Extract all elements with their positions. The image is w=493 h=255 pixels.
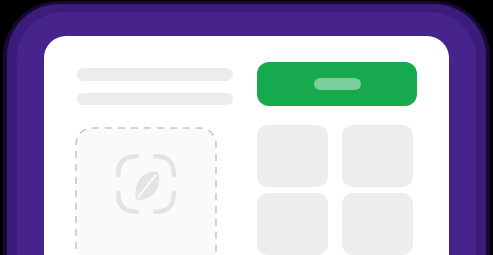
button[interactable]: Upload image bbox=[75, 127, 217, 252]
button[interactable]: Primary action bbox=[257, 62, 417, 106]
